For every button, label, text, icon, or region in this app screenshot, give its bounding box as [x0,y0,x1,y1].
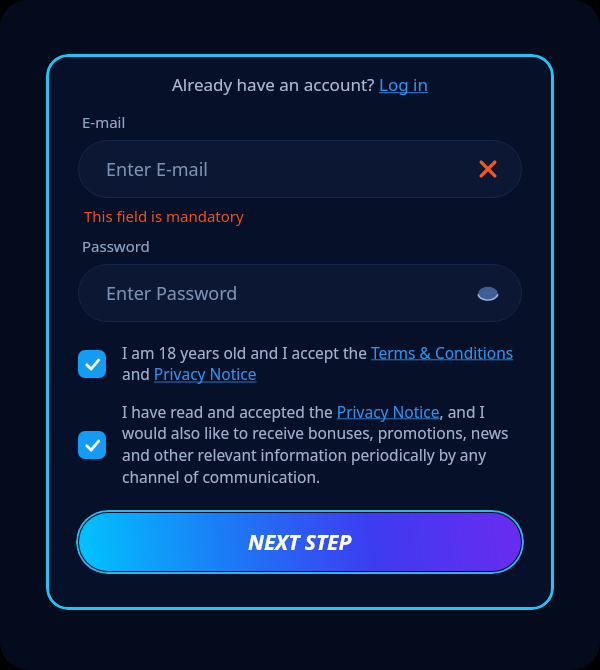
button[interactable]: Enter Password [78,264,522,322]
staticText: Password [82,236,150,256]
staticText: Enter Password [106,281,238,306]
button[interactable]: Show password [470,275,506,311]
staticText: Enter E-mail [106,157,208,182]
button[interactable]: Clear e-mail [470,151,506,187]
staticText: Log in [379,73,428,96]
staticText: This field is mandatory [84,206,244,226]
button[interactable]: Enter E-mail [78,140,522,198]
button[interactable]: Log in [379,73,428,96]
staticText: I have read and accepted the Privacy Not… [122,401,530,488]
staticText: I am 18 years old and I accept the Terms… [122,342,530,385]
button[interactable]: I have read and accepted the Privacy Not… [78,401,530,488]
staticText: E-mail [82,112,126,132]
staticText: Already have an account? [172,73,379,96]
staticText: NEXT STEP [248,528,352,557]
button[interactable]: I am 18 years old and I accept the Terms… [78,342,530,385]
button[interactable]: NEXT STEP [79,513,521,571]
